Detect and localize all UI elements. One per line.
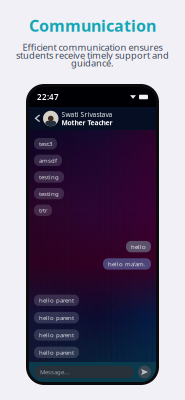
staticText: hello parent — [39, 349, 74, 356]
staticText: Swati Srivastava — [61, 111, 112, 118]
staticText: amsdf — [39, 157, 57, 164]
button[interactable]: Swati Srivastava — [43, 111, 150, 126]
staticText: 22:47 — [37, 92, 59, 102]
button[interactable]: Message... — [34, 366, 134, 378]
staticText: hello parent — [39, 331, 74, 338]
staticText: test3 — [39, 140, 52, 147]
button[interactable]: Back — [32, 108, 43, 128]
staticText: testing — [39, 190, 59, 197]
button[interactable]: Send — [138, 365, 151, 378]
staticText: hello parent — [39, 314, 74, 321]
staticText: Mother Teacher — [61, 119, 112, 126]
staticText: Communication — [29, 15, 156, 36]
staticText: Message... — [40, 368, 70, 375]
staticText: testing — [39, 173, 59, 180]
staticText: Efficient communication ensures — [22, 43, 162, 51]
staticText: trtr — [39, 207, 47, 214]
staticText: students receive timely support and — [16, 51, 169, 59]
staticText: hello ma'am. — [108, 260, 146, 267]
staticText: guidance. — [71, 59, 114, 67]
staticText: hello parent — [39, 297, 74, 304]
staticText: hello — [131, 243, 146, 250]
